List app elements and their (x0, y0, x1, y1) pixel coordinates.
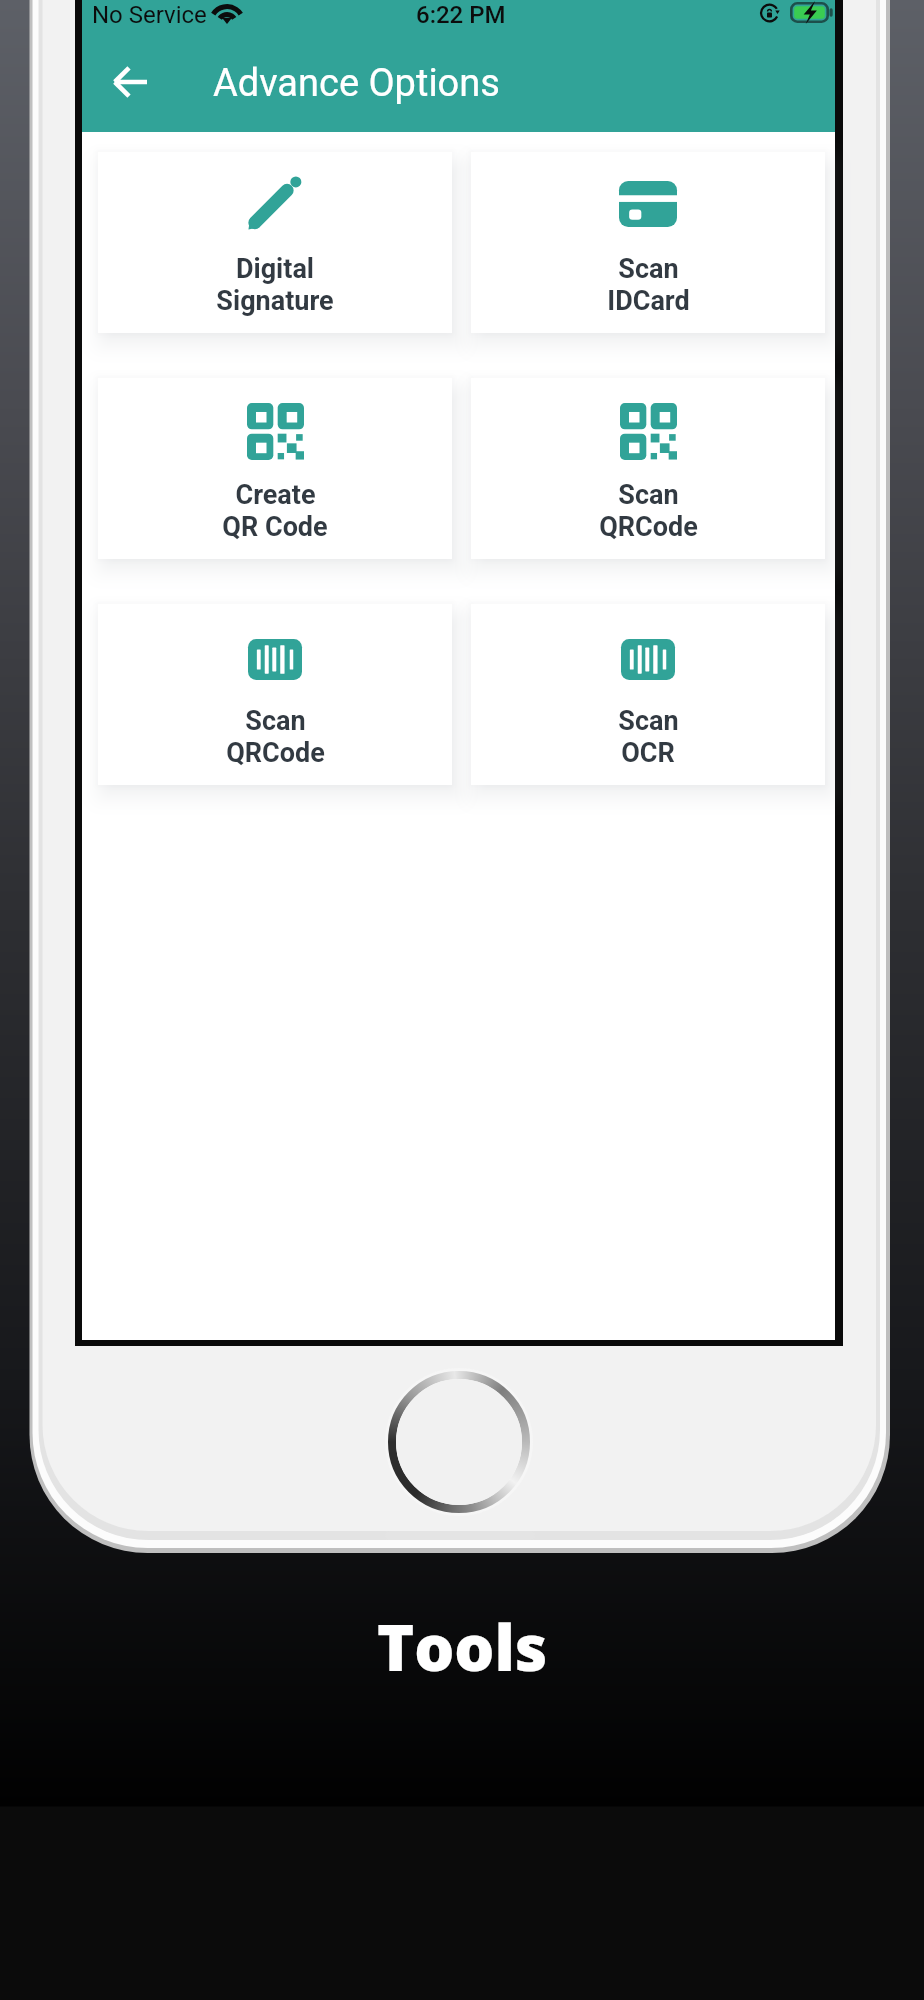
button[interactable]: Back (95, 47, 165, 117)
staticText: Scan (618, 253, 679, 285)
staticText: QRCode (599, 511, 698, 543)
staticText: Scan (618, 479, 679, 511)
button[interactable]: Scan (471, 604, 825, 785)
button[interactable]: Scan (471, 152, 825, 333)
button[interactable]: Digital (98, 152, 452, 333)
staticText: Create (235, 479, 316, 511)
button[interactable]: Create (98, 378, 452, 559)
staticText: 6:22 PM (416, 1, 506, 29)
staticText: Scan (618, 705, 679, 737)
staticText: Scan (245, 705, 306, 737)
staticText: Tools (377, 1604, 548, 1690)
staticText: OCR (621, 737, 675, 769)
staticText: IDCard (607, 285, 690, 317)
staticText: QRCode (226, 737, 325, 769)
staticText: Signature (216, 285, 334, 317)
staticText: Advance Options (213, 61, 500, 106)
button[interactable]: Scan (98, 604, 452, 785)
button[interactable]: Scan (471, 378, 825, 559)
staticText: No Service (92, 1, 207, 29)
staticText: QR Code (222, 511, 328, 543)
staticText: Digital (236, 253, 314, 285)
